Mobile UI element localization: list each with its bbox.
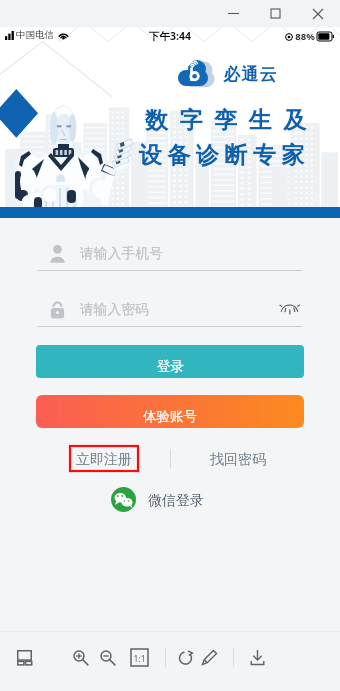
staticText: 立即注册 [76, 451, 132, 469]
button[interactable]: Zoom in [69, 646, 92, 669]
button[interactable]: Actual size [128, 646, 151, 669]
staticText: 体验账号 [143, 408, 197, 425]
button[interactable]: 登录 [36, 345, 304, 378]
staticText: 登录 [157, 358, 184, 375]
button[interactable]: Show password [276, 298, 302, 320]
staticText: 88% [295, 30, 315, 43]
button[interactable]: Zoom out [96, 646, 119, 669]
button[interactable]: Download [246, 646, 269, 669]
staticText: 必通云 [223, 64, 278, 85]
staticText: 请输入手机号 [80, 245, 163, 262]
button[interactable]: Layout [13, 646, 36, 669]
button[interactable]: Close [296, 0, 340, 27]
button[interactable]: 微信登录 [111, 487, 204, 512]
staticText: 1:1 [133, 653, 146, 665]
staticText: 下午3:44 [149, 29, 191, 43]
staticText: 微信登录 [148, 492, 204, 510]
button[interactable]: Maximize [254, 0, 296, 27]
button[interactable]: 体验账号 [36, 395, 304, 428]
button[interactable]: 找回密码 [202, 446, 274, 471]
button[interactable]: Rotate [174, 646, 197, 669]
button[interactable]: Edit [198, 646, 221, 669]
staticText: 找回密码 [210, 451, 266, 469]
staticText: 中国电信 [16, 29, 54, 41]
button[interactable]: Minimize [212, 0, 254, 27]
button[interactable]: 立即注册 [70, 446, 138, 471]
staticText: 数字孪生及 [139, 106, 312, 135]
staticText: 设备诊断专家 [136, 141, 307, 170]
staticText: 请输入密码 [80, 301, 149, 318]
